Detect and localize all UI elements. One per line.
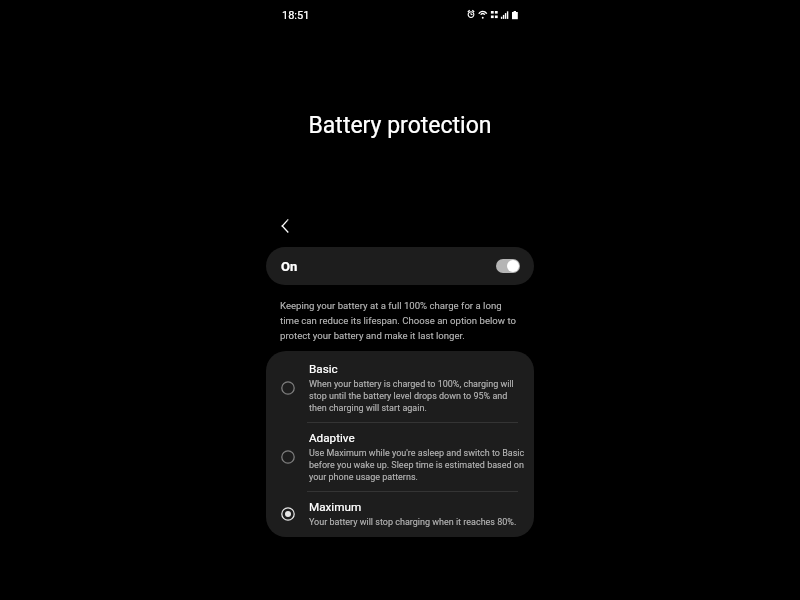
staticText: Basic bbox=[309, 362, 338, 376]
button[interactable]: Adaptive bbox=[266, 423, 534, 491]
button[interactable]: Navigate back bbox=[274, 215, 296, 237]
staticText: On bbox=[281, 259, 298, 274]
staticText: Maximum bbox=[309, 500, 362, 514]
button[interactable]: On bbox=[266, 247, 534, 285]
staticText: Keeping your battery at a full 100% char… bbox=[280, 300, 516, 341]
staticText: Use Maximum while you're asleep and swit… bbox=[309, 448, 525, 482]
button[interactable]: Maximum bbox=[266, 492, 534, 537]
staticText: Adaptive bbox=[309, 431, 355, 445]
staticText: Battery protection bbox=[264, 112, 536, 139]
button[interactable]: Basic bbox=[266, 351, 534, 422]
staticText: When your battery is charged to 100%, ch… bbox=[309, 379, 514, 413]
staticText: Your battery will stop charging when it … bbox=[309, 517, 517, 528]
staticText: 18:51 bbox=[282, 9, 310, 22]
